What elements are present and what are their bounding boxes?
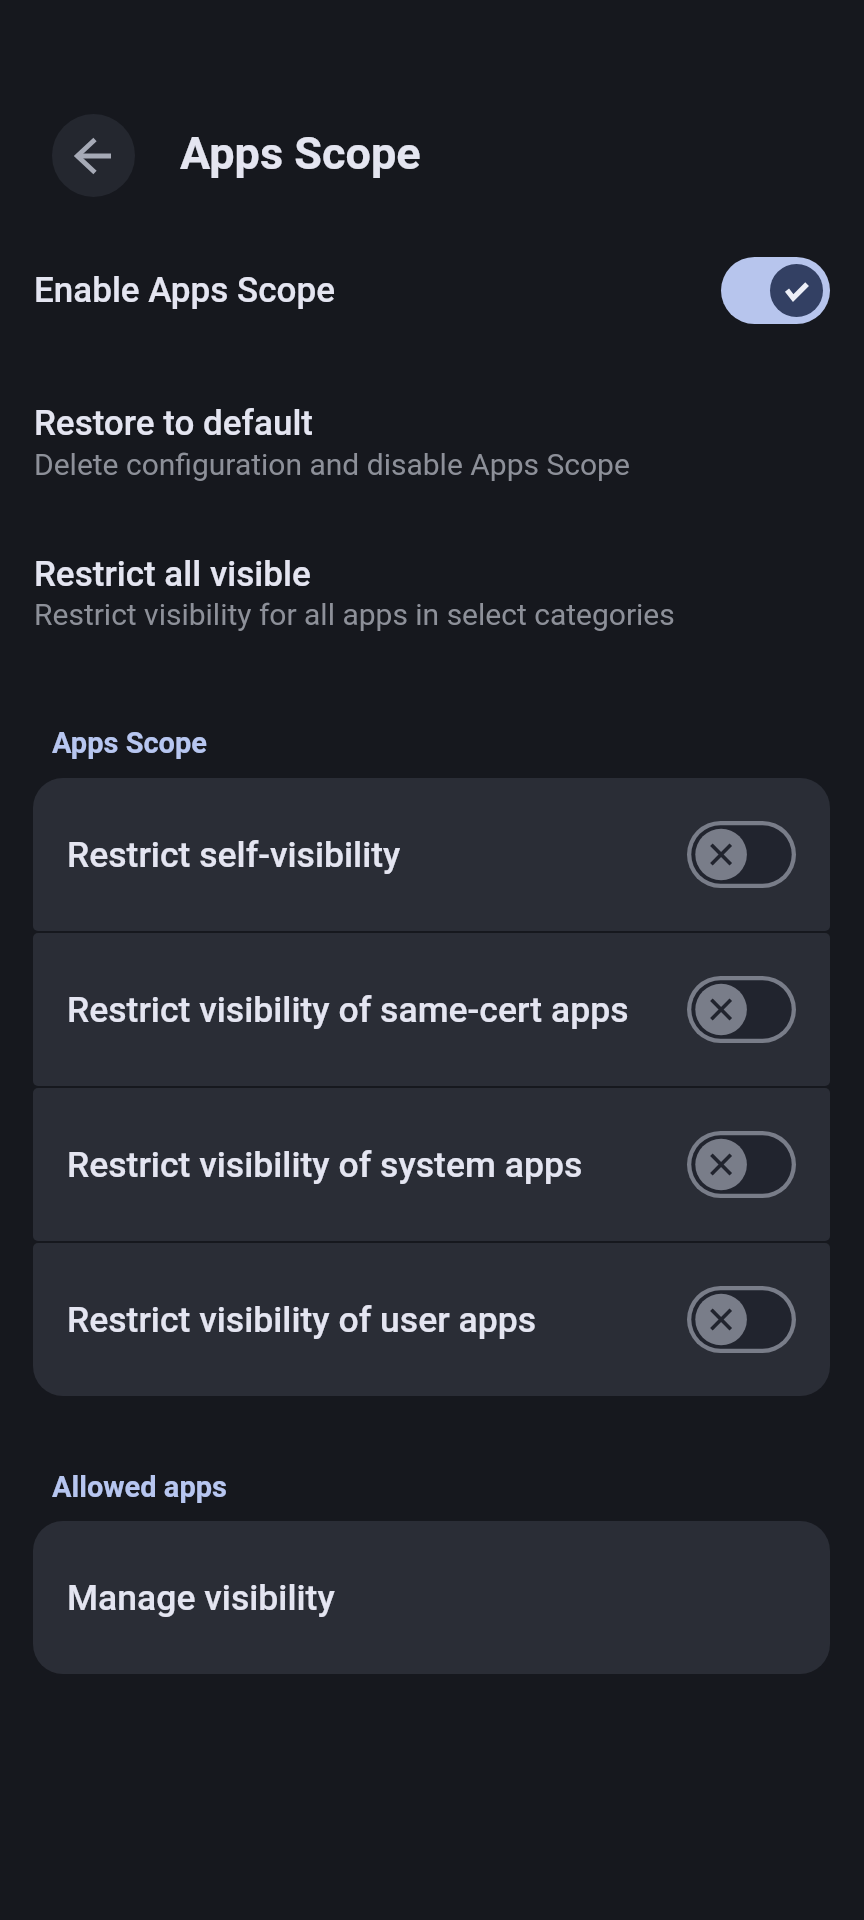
button[interactable]: Back bbox=[52, 114, 135, 197]
staticText: Delete configuration and disable Apps Sc… bbox=[34, 447, 630, 482]
button[interactable]: Restrict visibility of system apps bbox=[33, 1088, 830, 1241]
button[interactable]: Restrict self-visibility bbox=[33, 778, 830, 931]
staticText: Manage visibility bbox=[67, 1577, 335, 1619]
staticText: Allowed apps bbox=[52, 1470, 227, 1504]
staticText: Restrict visibility of same-cert apps bbox=[67, 989, 629, 1031]
staticText: Restrict visibility of system apps bbox=[67, 1144, 583, 1186]
staticText: Enable Apps Scope bbox=[34, 270, 335, 311]
staticText: Apps Scope bbox=[180, 127, 421, 180]
staticText: Restore to default bbox=[34, 403, 314, 444]
staticText: Restrict visibility for all apps in sele… bbox=[34, 597, 675, 632]
staticText: Restrict visibility of user apps bbox=[67, 1299, 537, 1341]
button[interactable]: Restrict all visible bbox=[0, 547, 864, 643]
button[interactable]: Restrict visibility of user apps bbox=[33, 1243, 830, 1396]
staticText: Restrict self-visibility bbox=[67, 834, 401, 876]
button[interactable]: Enable Apps Scope bbox=[0, 256, 864, 324]
staticText: Restrict all visible bbox=[34, 554, 311, 595]
button[interactable]: Restrict visibility of same-cert apps bbox=[33, 933, 830, 1086]
button[interactable]: Manage visibility bbox=[33, 1521, 830, 1674]
staticText: Apps Scope bbox=[52, 726, 208, 760]
button[interactable]: Restore to default bbox=[0, 396, 864, 492]
